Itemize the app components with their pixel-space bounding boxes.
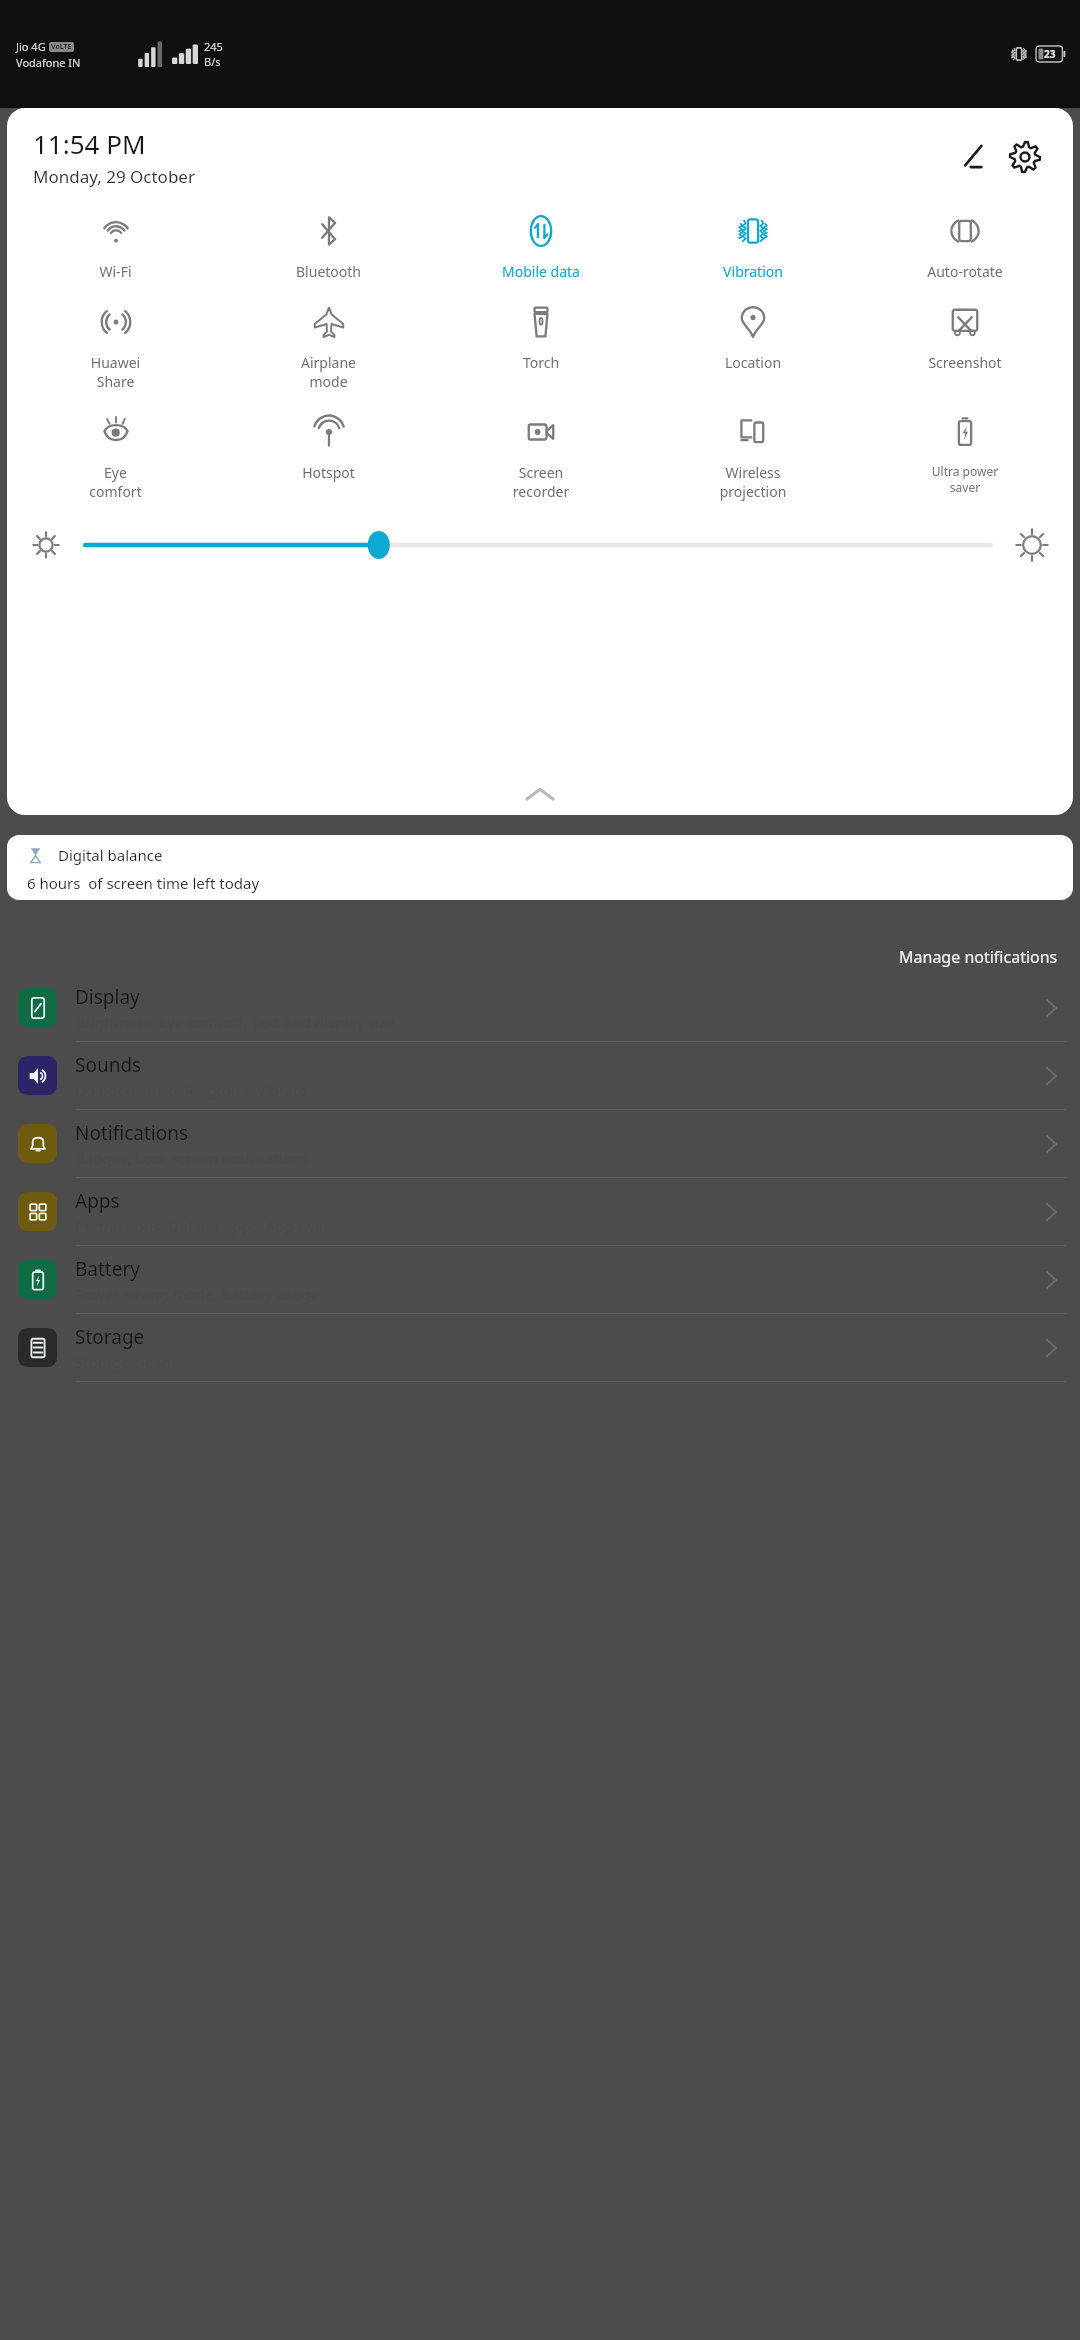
- staticText: Airplane mode: [222, 353, 435, 391]
- staticText: Jio 4G: [16, 39, 46, 54]
- button[interactable]: Ultra power saver: [859, 403, 1071, 500]
- button[interactable]: Settings: [999, 131, 1051, 183]
- staticText: Ultra power saver: [859, 463, 1071, 496]
- staticText: Apps: [75, 1188, 120, 1214]
- button[interactable]: Battery: [0, 1246, 1080, 1313]
- other: Collapse: [527, 788, 553, 801]
- button[interactable]: Hotspot: [222, 403, 435, 486]
- button[interactable]: Eye comfort: [9, 403, 222, 505]
- staticText: 23: [1044, 47, 1056, 61]
- button[interactable]: Bluetooth: [222, 202, 435, 285]
- staticText: B/s: [204, 54, 221, 69]
- button[interactable]: Screen recorder: [435, 403, 647, 505]
- staticText: Auto-rotate: [859, 262, 1071, 281]
- button[interactable]: Collapse: [7, 777, 1073, 811]
- staticText: Battery: [75, 1256, 140, 1282]
- button[interactable]: Wi-Fi: [9, 202, 222, 285]
- button[interactable]: [83, 530, 993, 560]
- staticText: Vibration: [647, 262, 859, 281]
- staticText: Screen recorder: [435, 463, 647, 501]
- button[interactable]: Vibration: [647, 202, 859, 285]
- button[interactable]: Auto-rotate: [859, 202, 1071, 285]
- staticText: Sounds: [75, 1052, 142, 1078]
- staticText: Hotspot: [222, 463, 435, 482]
- button[interactable]: Wireless projection: [647, 403, 859, 505]
- button[interactable]: Manage notifications: [899, 946, 1058, 968]
- button[interactable]: Mobile data: [435, 202, 647, 285]
- button[interactable]: Screenshot: [859, 293, 1071, 376]
- staticText: VoLTE: [51, 42, 72, 52]
- staticText: Torch: [435, 353, 647, 372]
- staticText: Notifications: [75, 1120, 189, 1146]
- staticText: Wi-Fi: [9, 262, 222, 281]
- button[interactable]: Display: [0, 974, 1080, 1041]
- button[interactable]: Apps: [0, 1178, 1080, 1245]
- button[interactable]: Airplane mode: [222, 293, 435, 395]
- other: Edit: [959, 143, 987, 171]
- button[interactable]: Huawei Share: [9, 293, 222, 395]
- staticText: Monday, 29 October: [33, 165, 195, 188]
- button[interactable]: Digital balance: [7, 835, 1073, 900]
- staticText: Bluetooth: [222, 262, 435, 281]
- staticText: 245: [204, 39, 223, 54]
- button[interactable]: Torch: [435, 293, 647, 376]
- staticText: Screenshot: [859, 353, 1071, 372]
- staticText: Location: [647, 353, 859, 372]
- button[interactable]: Notifications: [0, 1110, 1080, 1177]
- staticText: Huawei Share: [9, 353, 222, 391]
- button[interactable]: Sounds: [0, 1042, 1080, 1109]
- button[interactable]: Edit: [947, 131, 999, 183]
- button[interactable]: Location: [647, 293, 859, 376]
- staticText: Digital balance: [58, 845, 163, 865]
- other: Settings: [1009, 141, 1041, 173]
- staticText: Eye comfort: [9, 463, 222, 501]
- staticText: Display: [75, 984, 140, 1010]
- staticText: Storage: [75, 1324, 145, 1350]
- staticText: Wireless projection: [647, 463, 859, 501]
- staticText: 11:54 PM: [33, 126, 146, 161]
- staticText: Mobile data: [435, 262, 647, 281]
- button[interactable]: Storage: [0, 1314, 1080, 1381]
- staticText: 6 hours of screen time left today: [27, 873, 260, 893]
- staticText: Vodafone IN: [16, 55, 81, 70]
